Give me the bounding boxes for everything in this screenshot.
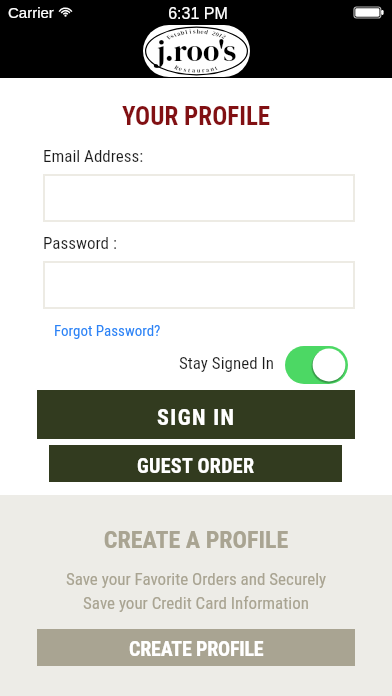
button[interactable]: GUEST ORDER [49, 445, 342, 482]
button[interactable]: Forgot Password? [52, 320, 163, 342]
staticText: Save your Credit Card Information [0, 593, 392, 613]
button[interactable]: CREATE PROFILE [37, 629, 355, 666]
staticText: CREATE A PROFILE [0, 526, 392, 554]
staticText: Stay Signed In [179, 353, 274, 373]
staticText: j.roo's [157, 30, 237, 71]
staticText: Carrier [8, 4, 54, 21]
staticText: Password : [43, 233, 117, 253]
staticText: Email Address: [43, 146, 144, 166]
button[interactable]: Email Address input [43, 174, 355, 222]
button[interactable]: Stay Signed In toggle [285, 346, 348, 384]
staticText: GUEST ORDER [137, 454, 255, 477]
staticText: CREATE PROFILE [129, 637, 264, 660]
button[interactable]: Password input [43, 261, 355, 309]
staticText: Save your Favorite Orders and Securely [0, 569, 392, 589]
staticText: 6:31 PM [2, 5, 392, 23]
button[interactable]: j.roo's Restaurant logo [143, 25, 250, 77]
staticText: Forgot Password? [54, 322, 161, 340]
staticText: SIGN IN [157, 405, 236, 431]
staticText: YOUR PROFILE [0, 102, 392, 131]
button[interactable]: SIGN IN [37, 390, 355, 439]
